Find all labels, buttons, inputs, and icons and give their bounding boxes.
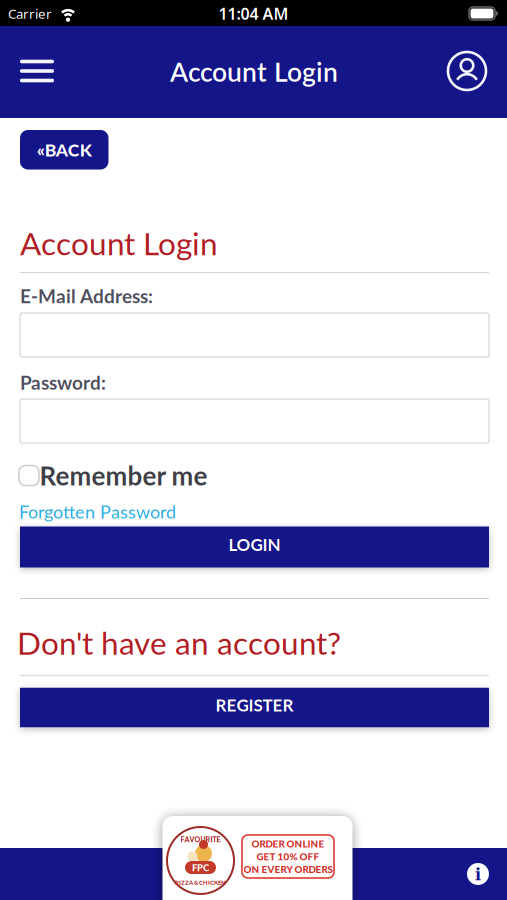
button[interactable]: Remember me: [0, 460, 207, 491]
staticText: GET 10% OFF: [256, 851, 319, 862]
staticText: 11:04 AM: [218, 3, 288, 24]
staticText: i: [475, 865, 481, 884]
staticText: LOGIN: [228, 534, 280, 555]
button[interactable]: «BACK: [20, 130, 108, 169]
staticText: Don't have an account?: [17, 624, 341, 661]
staticText: Remember me: [39, 460, 207, 491]
staticText: REGISTER: [215, 695, 293, 715]
staticText: ON EVERY ORDERS: [243, 863, 332, 875]
button[interactable]: [440, 44, 494, 98]
button[interactable]: Forgotten Password: [0, 501, 176, 522]
staticText: Account Login: [170, 56, 338, 87]
staticText: ORDER ONLINE: [251, 838, 324, 850]
staticText: FPC: [192, 862, 209, 873]
button[interactable]: LOGIN: [20, 526, 489, 567]
button[interactable]: REGISTER: [20, 688, 489, 727]
staticText: PIZZA & CHICKEN: [175, 879, 226, 886]
staticText: «BACK: [37, 139, 92, 160]
button[interactable]: [10, 49, 64, 92]
staticText: Password:: [20, 371, 106, 394]
staticText: FAVOURITE: [180, 835, 220, 844]
staticText: Forgotten Password: [19, 501, 176, 522]
staticText: E-Mail Address:: [20, 285, 153, 307]
staticText: Account Login: [20, 224, 218, 262]
button[interactable]: i: [459, 855, 497, 893]
staticText: Carrier: [8, 5, 52, 22]
